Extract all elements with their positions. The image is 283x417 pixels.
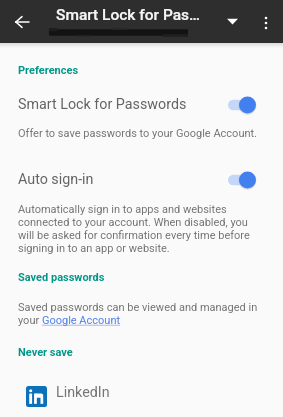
staticText: Saved passwords bbox=[18, 271, 105, 284]
button[interactable]: Choose account bbox=[219, 8, 246, 35]
staticText: Never save bbox=[18, 346, 73, 359]
staticText: Smart Lock for Passwords bbox=[18, 96, 187, 113]
staticText: Smart Lock for Pas… bbox=[56, 6, 201, 24]
button[interactable]: Navigate up bbox=[7, 7, 36, 36]
staticText: LinkedIn bbox=[56, 384, 110, 401]
staticText: Automatically sign in to apps and websit… bbox=[18, 203, 261, 255]
staticText: Preferences bbox=[18, 64, 79, 77]
button[interactable]: Smart Lock for Passwords bbox=[0, 87, 283, 117]
button[interactable]: More options bbox=[252, 9, 279, 36]
button[interactable]: LinkedIn bbox=[0, 373, 283, 407]
staticText: Auto sign-in bbox=[18, 171, 94, 188]
button[interactable]: Auto sign-in bbox=[0, 162, 283, 192]
staticText: Saved passwords can be viewed and manage… bbox=[18, 301, 261, 327]
staticText: Offer to save passwords to your Google A… bbox=[18, 127, 261, 140]
